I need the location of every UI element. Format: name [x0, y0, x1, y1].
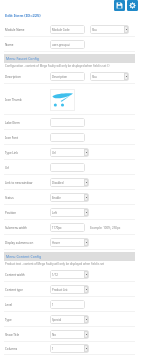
staticText: Sku [92, 75, 97, 79]
staticText: Hover [52, 241, 60, 245]
staticText: Left [52, 211, 58, 215]
staticText: Content width [5, 273, 25, 277]
staticText: Icon Thumb [5, 98, 22, 102]
staticText: 1/12 [52, 273, 58, 277]
button[interactable] [50, 163, 85, 172]
staticText: user-group-ui [52, 43, 71, 47]
staticText: Product List [52, 288, 68, 292]
staticText: Level [5, 303, 13, 307]
staticText: Icon Font [5, 136, 18, 140]
staticText: Module Code [52, 28, 70, 32]
button[interactable] [50, 118, 85, 127]
staticText: Show Title [5, 333, 20, 337]
staticText: Configuration - content of Mega Faulty w… [5, 64, 110, 68]
button[interactable]: Enable [50, 193, 89, 202]
button[interactable]: 1/12 [50, 270, 89, 279]
staticText: Example: 100%, 250px [90, 226, 121, 230]
staticText: No [52, 333, 56, 337]
staticText: 1170px [52, 226, 62, 230]
button[interactable]: Product List [50, 285, 89, 294]
button[interactable]: 1 [50, 344, 89, 353]
button[interactable]: Disabled [50, 178, 89, 187]
staticText: Product text - content of Mega Faulty wi… [5, 262, 105, 266]
button[interactable]: 1 [50, 300, 85, 309]
staticText: Link to new window [5, 181, 33, 185]
button[interactable]: Description [50, 72, 85, 81]
staticText: Edit Item (ID=225) [5, 13, 41, 18]
staticText: Url [5, 166, 10, 170]
staticText: Menu Faucet Config [6, 56, 39, 61]
staticText: Content type [5, 288, 23, 292]
staticText: Enable [52, 196, 61, 200]
staticText: Special [52, 318, 62, 322]
staticText: Status [5, 196, 14, 200]
staticText: Type [5, 318, 12, 322]
staticText: Position [5, 211, 17, 215]
staticText: Name [5, 43, 14, 47]
staticText: Description [52, 75, 68, 79]
staticText: Menu Content Config [6, 254, 42, 259]
staticText: 1 [52, 347, 54, 351]
staticText: Columns [5, 347, 18, 351]
button[interactable]: Left [50, 208, 89, 217]
button[interactable]: Sku [90, 72, 129, 81]
staticText: Description [5, 75, 21, 79]
button[interactable]: Special [50, 315, 89, 324]
button[interactable]: Settings [127, 0, 138, 11]
button[interactable]: No [50, 330, 89, 339]
button[interactable]: 1170px [50, 223, 85, 232]
button[interactable]: user-group-ui [50, 40, 85, 49]
button[interactable] [50, 133, 85, 142]
staticText: Label Item [5, 121, 20, 125]
staticText: Url [52, 151, 56, 155]
staticText: Submenu width [5, 226, 27, 230]
button[interactable]: Save [114, 0, 125, 11]
staticText: Type Link [5, 151, 18, 155]
button[interactable]: Module Code [50, 25, 85, 34]
staticText: Sku [92, 28, 97, 32]
staticText: Display submenu on [5, 241, 34, 245]
staticText: 1 [52, 303, 54, 307]
button[interactable]: Url [50, 148, 89, 157]
staticText: Disabled [52, 181, 64, 185]
button[interactable]: Hover [50, 238, 89, 247]
staticText: Module Name [5, 28, 25, 32]
button[interactable]: Sku [90, 25, 129, 34]
